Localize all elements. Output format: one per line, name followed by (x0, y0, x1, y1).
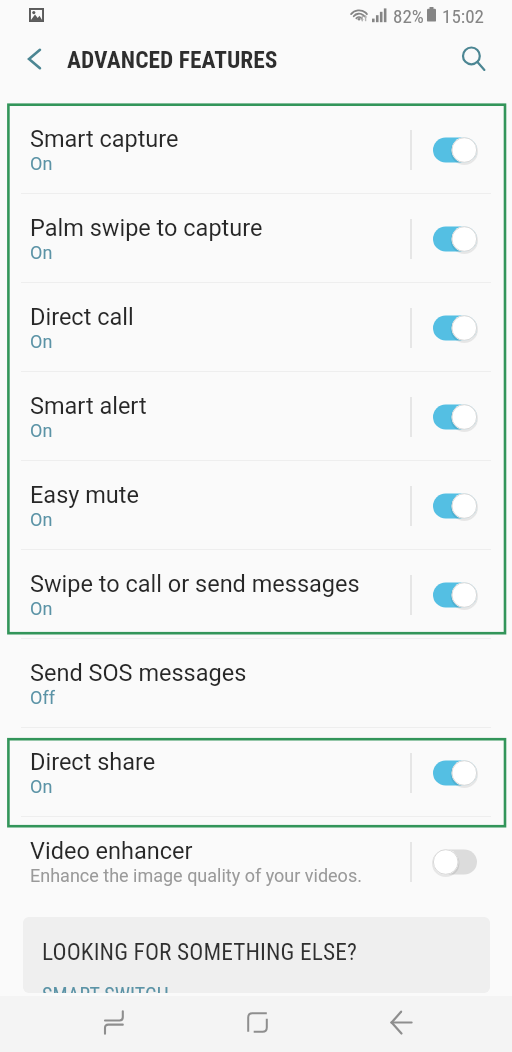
staticText: On (30, 598, 53, 619)
button[interactable]: Navigate up (17, 42, 51, 76)
staticText: On (30, 776, 53, 797)
staticText: SMART SWITCH (42, 983, 170, 993)
button[interactable]: Easy mute (0, 461, 512, 550)
button[interactable]: Smart capture (0, 105, 512, 194)
button[interactable]: Palm swipe to capture (0, 194, 512, 283)
staticText: Video enhancer (30, 837, 193, 865)
staticText: On (30, 153, 53, 174)
staticText: Direct share (30, 748, 156, 776)
staticText: 82% (393, 5, 424, 27)
button[interactable]: Send SOS messages (0, 639, 512, 728)
staticText: On (30, 331, 53, 352)
staticText: LOOKING FOR SOMETHING ELSE? (42, 938, 357, 965)
button[interactable]: Smart alert (0, 372, 512, 461)
staticText: Smart alert (30, 392, 147, 420)
button[interactable]: Swipe to call or send messages (0, 550, 512, 639)
staticText: 15:02 (442, 5, 484, 27)
staticText: Smart capture (30, 125, 179, 153)
staticText: Direct call (30, 303, 134, 331)
staticText: On (30, 242, 53, 263)
staticText: Easy mute (30, 481, 139, 509)
staticText: Send SOS messages (30, 659, 247, 687)
button[interactable]: Video enhancer (0, 817, 512, 906)
button[interactable]: Home (237, 1002, 277, 1042)
button[interactable]: Direct call (0, 283, 512, 372)
staticText: Enhance the image quality of your videos… (30, 865, 362, 886)
staticText: On (30, 509, 53, 530)
staticText: Swipe to call or send messages (30, 570, 360, 598)
staticText: ADVANCED FEATURES (67, 46, 278, 73)
button[interactable]: Recent apps (94, 1002, 134, 1042)
button[interactable]: Search (457, 42, 491, 76)
staticText: Off (30, 687, 55, 708)
button[interactable]: Back (381, 1002, 421, 1042)
staticText: Palm swipe to capture (30, 214, 263, 242)
button[interactable]: LOOKING FOR SOMETHING ELSE? (23, 917, 490, 993)
button[interactable]: Direct share (0, 728, 512, 817)
staticText: On (30, 420, 53, 441)
